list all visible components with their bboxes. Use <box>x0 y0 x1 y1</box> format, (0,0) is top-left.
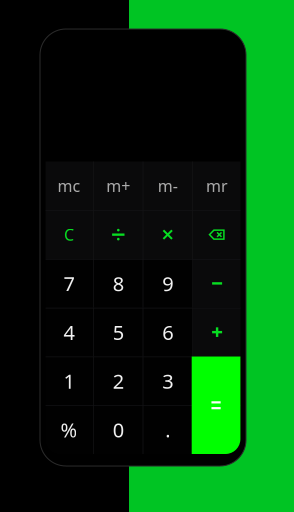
button[interactable]: 2 <box>94 356 143 405</box>
staticText: 2 <box>113 368 124 394</box>
button[interactable]: Divide <box>94 210 143 259</box>
staticText: 5 <box>113 319 124 345</box>
staticText: 6 <box>162 319 173 345</box>
button[interactable]: 6 <box>143 308 192 357</box>
button[interactable]: Add <box>193 308 241 357</box>
staticText: . <box>165 416 170 443</box>
button[interactable]: 0 <box>94 405 143 454</box>
button[interactable]: Multiply <box>143 210 192 259</box>
staticText: 1 <box>63 368 74 394</box>
button[interactable]: mr <box>193 161 241 210</box>
staticText: C <box>64 224 74 245</box>
button[interactable]: 7 <box>45 259 93 308</box>
button[interactable]: 3 <box>143 356 192 405</box>
button[interactable]: 4 <box>45 308 93 357</box>
staticText: 0 <box>113 416 124 443</box>
staticText: 8 <box>113 270 124 297</box>
staticText: m+ <box>106 175 130 196</box>
staticText: % <box>60 416 77 443</box>
button[interactable]: Equals <box>192 356 240 454</box>
staticText: m- <box>158 175 178 196</box>
button[interactable]: 9 <box>143 259 192 308</box>
staticText: 4 <box>63 319 74 345</box>
button[interactable]: 1 <box>45 356 93 405</box>
button[interactable]: 8 <box>94 259 143 308</box>
button[interactable]: % <box>45 405 93 454</box>
button[interactable]: 5 <box>94 308 143 357</box>
button[interactable]: m- <box>143 161 192 210</box>
staticText: 3 <box>162 368 173 394</box>
staticText: 9 <box>162 270 173 297</box>
staticText: mr <box>206 175 228 196</box>
staticText: mc <box>57 175 80 196</box>
button[interactable]: C <box>45 210 93 259</box>
button[interactable]: Subtract <box>193 259 241 308</box>
button[interactable]: Delete <box>193 210 241 259</box>
staticText: 7 <box>63 270 74 297</box>
button[interactable]: mc <box>45 161 93 210</box>
button[interactable]: m+ <box>94 161 143 210</box>
button[interactable]: . <box>143 405 192 454</box>
